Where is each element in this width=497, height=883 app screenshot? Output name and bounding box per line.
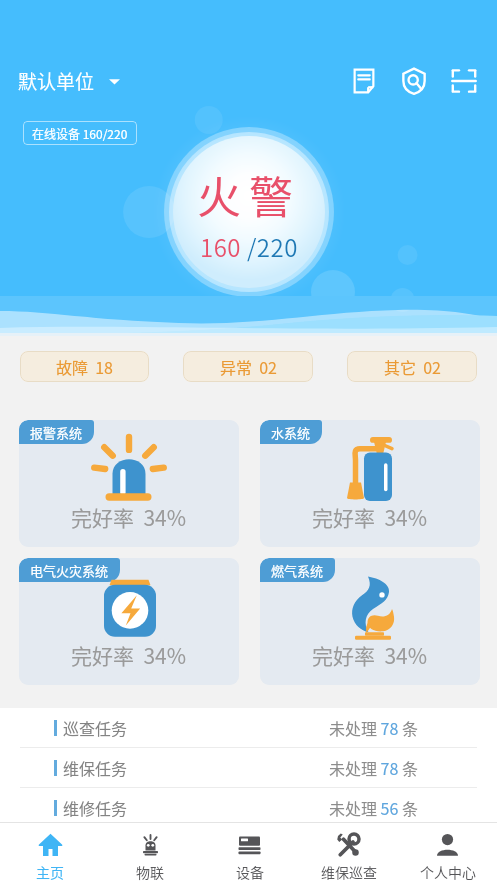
staticText: 维保巡查 — [321, 862, 377, 882]
staticText: 火警 — [197, 163, 301, 227]
staticText: 巡查任务 — [63, 716, 128, 739]
staticText: 物联 — [136, 862, 164, 882]
staticText: 个人中心 — [420, 862, 476, 882]
button[interactable]: 电气火灾系统 — [19, 558, 239, 685]
button[interactable]: 设备 — [200, 823, 299, 883]
staticText: 设备 — [236, 862, 264, 882]
staticText: 异常 02 — [220, 355, 277, 378]
staticText: 在线设备 160/220 — [32, 125, 128, 142]
staticText: 未处理 78 条 — [329, 756, 418, 779]
button[interactable]: 报警系统 — [19, 420, 239, 547]
staticText: 默认单位 — [18, 67, 95, 95]
button[interactable]: 主页 — [0, 823, 100, 883]
staticText: 完好率 34% — [71, 640, 187, 670]
staticText: 完好率 34% — [71, 502, 187, 532]
staticText: 完好率 34% — [312, 640, 428, 670]
staticText: 维修任务 — [63, 796, 128, 819]
button[interactable]: 巡查任务 — [0, 708, 497, 747]
staticText: 未处理 78 条 — [329, 716, 418, 739]
staticText: 故障 18 — [56, 355, 113, 378]
button[interactable]: 维保任务 — [0, 748, 497, 787]
staticText: 其它 02 — [384, 355, 441, 378]
button[interactable]: 在线设备 160/220 — [23, 121, 137, 145]
button[interactable]: 默认单位 — [14, 63, 124, 99]
staticText: 维保任务 — [63, 756, 128, 779]
staticText: 主页 — [36, 862, 64, 882]
staticText: 报警系统 — [30, 423, 83, 442]
button[interactable]: 燃气系统 — [260, 558, 480, 685]
button[interactable]: 个人中心 — [398, 823, 497, 883]
staticText: 未处理 56 条 — [329, 796, 418, 819]
button[interactable]: 其它 02 — [347, 351, 477, 382]
button[interactable]: Scan — [445, 62, 483, 100]
button[interactable]: 维修任务 — [0, 788, 497, 827]
button[interactable]: 维保巡查 — [299, 823, 398, 883]
staticText: 水系统 — [271, 423, 311, 442]
button[interactable]: 水系统 — [260, 420, 480, 547]
button[interactable]: 异常 02 — [183, 351, 313, 382]
staticText: 燃气系统 — [271, 561, 324, 580]
staticText: 电气火灾系统 — [30, 561, 109, 580]
button[interactable]: Reports — [345, 62, 383, 100]
button[interactable]: Inspection — [395, 62, 433, 100]
button[interactable]: 物联 — [100, 823, 200, 883]
button[interactable]: 故障 18 — [20, 351, 149, 382]
staticText: 160 /220 — [200, 229, 298, 264]
staticText: 完好率 34% — [312, 502, 428, 532]
